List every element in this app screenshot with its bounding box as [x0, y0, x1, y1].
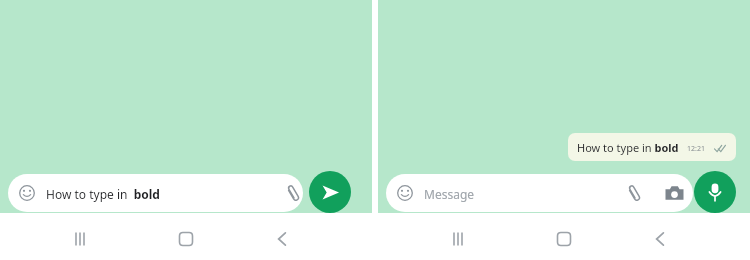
button[interactable]: Emoji [8, 174, 303, 212]
button[interactable]: Send [309, 171, 351, 213]
button[interactable]: Emoji [19, 185, 35, 201]
button[interactable]: Attach [625, 182, 647, 204]
staticText: How to type in bold [46, 186, 160, 202]
button[interactable]: Home [552, 227, 576, 251]
button[interactable]: Emoji [386, 174, 693, 212]
button[interactable]: Recent apps [446, 227, 470, 251]
button[interactable]: How to type in bold [568, 133, 736, 161]
button[interactable]: Emoji [397, 185, 413, 201]
button[interactable]: Recent apps [68, 227, 92, 251]
button[interactable]: Back [648, 227, 672, 251]
button[interactable]: Voice message [694, 171, 736, 213]
staticText: 12:21 [687, 144, 705, 154]
staticText: Message [424, 186, 475, 202]
button[interactable]: Attach [284, 182, 306, 204]
button[interactable]: Home [174, 227, 198, 251]
button[interactable]: Back [270, 227, 294, 251]
staticText: How to type in bold [577, 140, 679, 155]
button[interactable]: Camera [664, 183, 685, 204]
